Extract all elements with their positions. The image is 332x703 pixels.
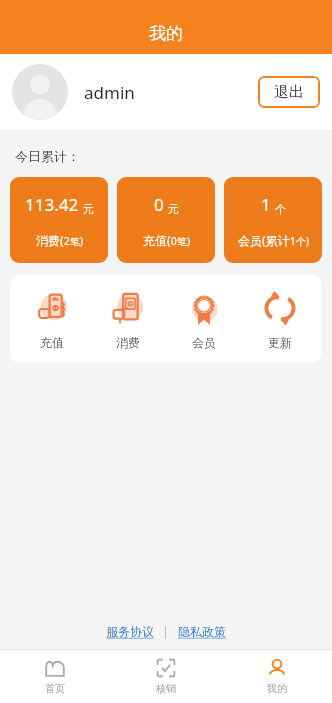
staticText: 会员 xyxy=(192,335,216,350)
staticText: 今日累计： xyxy=(15,148,80,164)
staticText: 充值 xyxy=(40,335,64,350)
staticText: 笔) xyxy=(177,234,190,248)
staticText: 113.42 xyxy=(25,193,79,216)
staticText: 元 xyxy=(168,202,179,216)
staticText: 服务协议 xyxy=(106,624,154,639)
staticText: 我的 xyxy=(267,682,287,695)
button[interactable]: 首页 xyxy=(0,657,110,695)
staticText: 首页 xyxy=(45,682,65,695)
staticText: admin xyxy=(84,81,135,104)
button[interactable] xyxy=(12,64,68,120)
staticText: 元 xyxy=(83,202,94,216)
button[interactable]: 会员 xyxy=(166,283,242,356)
button[interactable]: 服务协议 xyxy=(104,624,156,639)
staticText: 1 xyxy=(261,193,271,216)
staticText: 0 xyxy=(171,234,177,248)
button[interactable]: 1 xyxy=(224,177,322,263)
staticText: 1 xyxy=(290,234,296,248)
staticText: 我的 xyxy=(149,23,183,44)
button[interactable]: 0 xyxy=(117,177,215,263)
staticText: 会员(累计 xyxy=(238,232,290,248)
button[interactable]: 隐私政策 xyxy=(176,624,228,639)
button[interactable]: 核销 xyxy=(110,657,221,695)
staticText: 笔) xyxy=(70,234,83,248)
staticText: 0 xyxy=(154,193,164,216)
staticText: 消费( xyxy=(36,232,64,248)
button[interactable]: 消费 xyxy=(90,283,166,356)
staticText: 消费 xyxy=(116,335,140,350)
staticText: 个) xyxy=(296,234,309,248)
staticText: 退出 xyxy=(274,83,304,102)
button[interactable]: 退出 xyxy=(258,76,320,108)
staticText: 个 xyxy=(275,202,286,216)
staticText: 2 xyxy=(64,234,70,248)
staticText: 隐私政策 xyxy=(178,624,226,639)
button[interactable]: 更新 xyxy=(242,283,318,356)
button[interactable]: 我的 xyxy=(221,657,332,695)
staticText: 更新 xyxy=(268,335,292,350)
button[interactable]: 充值 xyxy=(14,283,90,356)
button[interactable]: 113.42 xyxy=(10,177,108,263)
staticText: | xyxy=(156,623,176,639)
staticText: 充值( xyxy=(143,232,171,248)
staticText: 核销 xyxy=(156,682,176,695)
